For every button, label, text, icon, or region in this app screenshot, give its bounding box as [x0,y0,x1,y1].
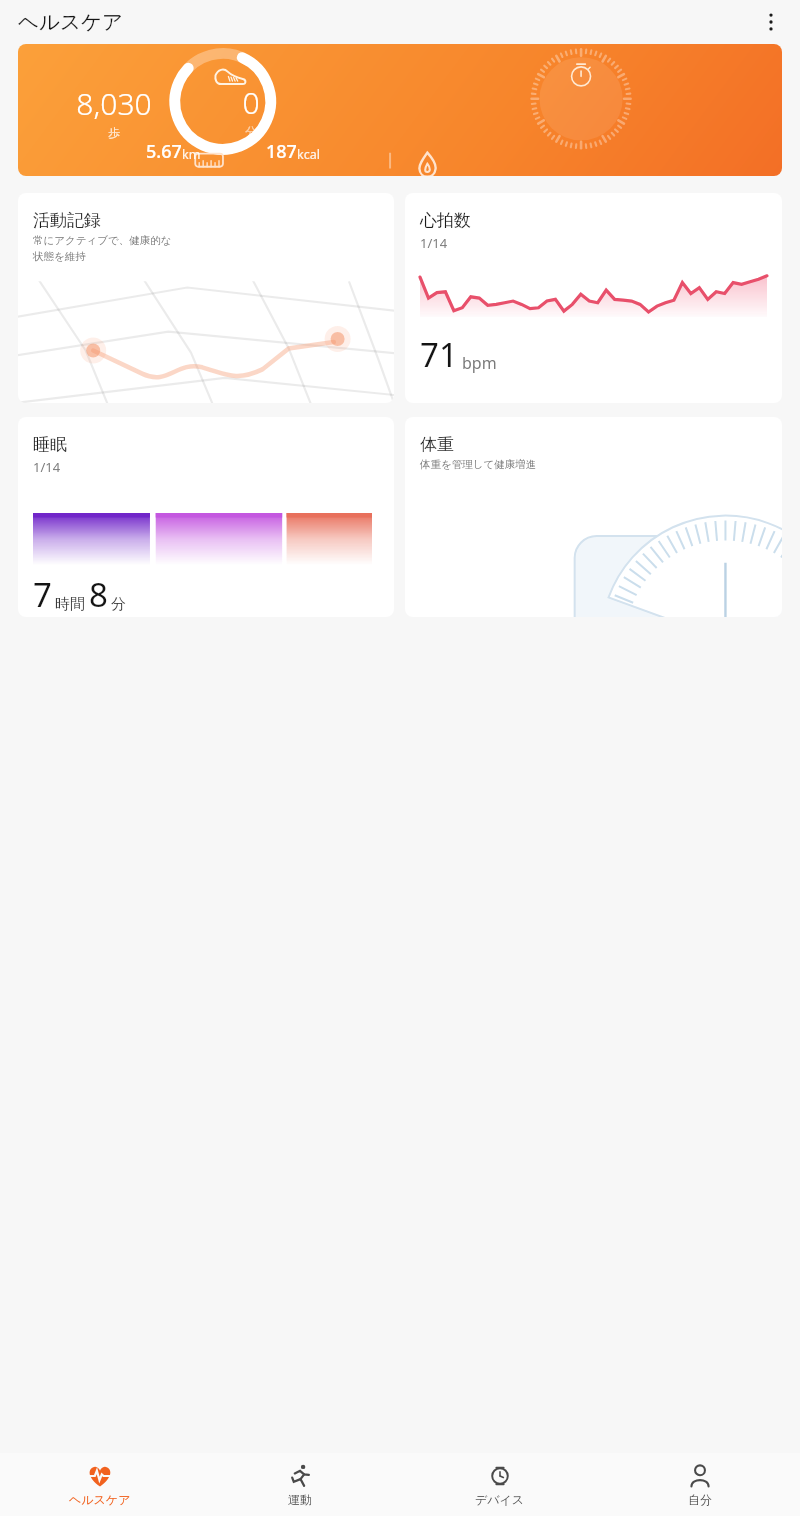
staticText: 8,030 [76,83,152,124]
staticText: 心拍数 [420,210,471,231]
button[interactable]: 体重 [405,417,782,617]
staticText: 時間 [55,595,85,614]
button[interactable]: 活動記録 [18,193,394,403]
staticText: 分 [111,595,126,614]
staticText: 7 [33,572,52,617]
button[interactable]: 睡眠 [18,417,394,617]
staticText: 活動記録 [33,210,101,231]
staticText: 運動 [288,1492,312,1507]
staticText: bpm [462,352,497,374]
button[interactable]: 心拍数 [405,193,782,403]
staticText: 体重 [420,434,454,455]
staticText: 睡眠 [33,434,67,455]
button[interactable]: More options [756,7,786,37]
staticText: kcal [297,146,320,163]
staticText: 71 [420,332,458,377]
button[interactable]: 自分 [600,1453,800,1516]
button[interactable]: 運動 [200,1453,400,1516]
staticText: 自分 [688,1492,712,1507]
staticText: 常にアクティブで、健康的な 状態を維持 [33,234,172,263]
staticText: 1/14 [33,458,61,476]
button[interactable]: 8,030 [18,44,782,176]
staticText: 8 [89,572,108,617]
staticText: 体重を管理して健康増進 [420,458,537,471]
staticText: 5.67 [146,139,182,164]
staticText: 1/14 [420,234,448,252]
staticText: 歩 [108,125,120,140]
staticText: 0 [242,82,260,123]
staticText: 187 [266,139,297,164]
staticText: デバイス [475,1492,525,1507]
staticText: km [182,146,201,163]
staticText: ヘルスケア [69,1492,131,1507]
staticText: 分 [245,124,257,139]
button[interactable]: ヘルスケア [0,1453,200,1516]
button[interactable]: デバイス [400,1453,600,1516]
staticText: ヘルスケア [18,9,123,35]
